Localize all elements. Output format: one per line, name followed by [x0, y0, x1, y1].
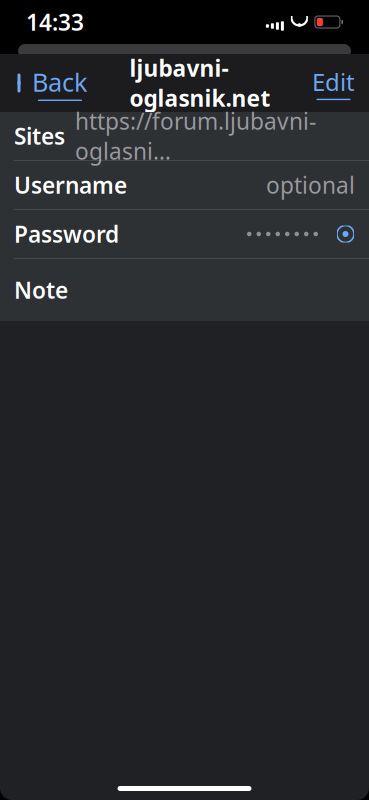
button[interactable]: Back [14, 55, 94, 111]
staticText: Note [14, 275, 68, 305]
staticText: Username [14, 170, 127, 200]
button[interactable]: Edit [306, 56, 355, 110]
button[interactable]: Note [0, 259, 369, 321]
staticText: Password [14, 219, 119, 249]
staticText: ljubavni-oglasnik.net [129, 53, 270, 113]
staticText: Edit [312, 66, 355, 98]
button[interactable]: Password [0, 210, 369, 258]
staticText: 14:33 [26, 7, 84, 37]
staticText: https://forum.ljubavni-oglasni… [75, 106, 316, 166]
button[interactable]: Sites [0, 112, 369, 160]
staticText: optional [266, 170, 355, 200]
staticText: Sites [14, 121, 65, 151]
button[interactable]: Username [0, 161, 369, 209]
staticText: Back [32, 65, 88, 99]
